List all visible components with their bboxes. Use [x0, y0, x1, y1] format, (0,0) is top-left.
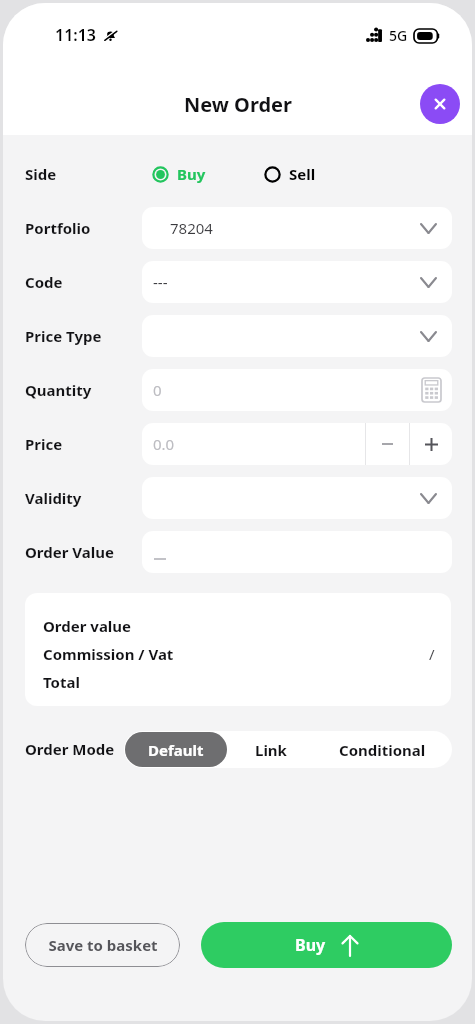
staticText: Conditional: [339, 740, 426, 760]
button[interactable]: Buy: [201, 922, 452, 968]
staticText: Sell: [289, 164, 316, 184]
staticText: Buy: [177, 164, 206, 184]
staticText: 0.0: [153, 434, 175, 454]
staticText: Side: [25, 164, 57, 184]
button[interactable]: Calculator: [422, 378, 441, 402]
staticText: Total: [43, 672, 80, 692]
button[interactable]: Link: [227, 731, 315, 768]
staticText: Order value: [43, 616, 132, 636]
button[interactable]: Sell: [264, 164, 316, 184]
staticText: Default: [148, 740, 204, 760]
staticText: 11:13: [55, 24, 97, 46]
button[interactable]: [142, 315, 452, 357]
staticText: 78204: [170, 218, 213, 238]
staticText: 5G: [389, 26, 408, 45]
staticText: Code: [25, 272, 63, 292]
staticText: Order Mode: [25, 739, 115, 759]
button[interactable]: Increase price: [410, 423, 452, 465]
button[interactable]: Save to basket: [25, 923, 180, 967]
staticText: New Order: [184, 91, 292, 118]
button[interactable]: Close: [420, 84, 460, 124]
staticText: Link: [255, 740, 287, 760]
button[interactable]: Conditional: [315, 731, 452, 768]
button[interactable]: 78204: [142, 207, 452, 249]
button[interactable]: Buy: [152, 164, 206, 184]
button[interactable]: ---: [142, 261, 452, 303]
staticText: Quantity: [25, 380, 92, 400]
staticText: /: [429, 644, 435, 664]
staticText: Validity: [25, 488, 82, 508]
staticText: Save to basket: [48, 935, 158, 955]
button[interactable]: Decrease price: [366, 423, 409, 465]
button[interactable]: Default: [125, 732, 227, 767]
staticText: Price: [25, 434, 63, 454]
staticText: Buy: [295, 934, 326, 956]
staticText: Price Type: [25, 326, 102, 346]
staticText: 0: [153, 380, 162, 400]
button[interactable]: 0: [142, 369, 452, 411]
staticText: ---: [153, 272, 168, 292]
button[interactable]: [142, 477, 452, 519]
button[interactable]: 0.0: [142, 423, 365, 465]
staticText: Order Value: [25, 542, 114, 562]
staticText: Commission / Vat: [43, 644, 174, 664]
staticText: Portfolio: [25, 218, 91, 238]
